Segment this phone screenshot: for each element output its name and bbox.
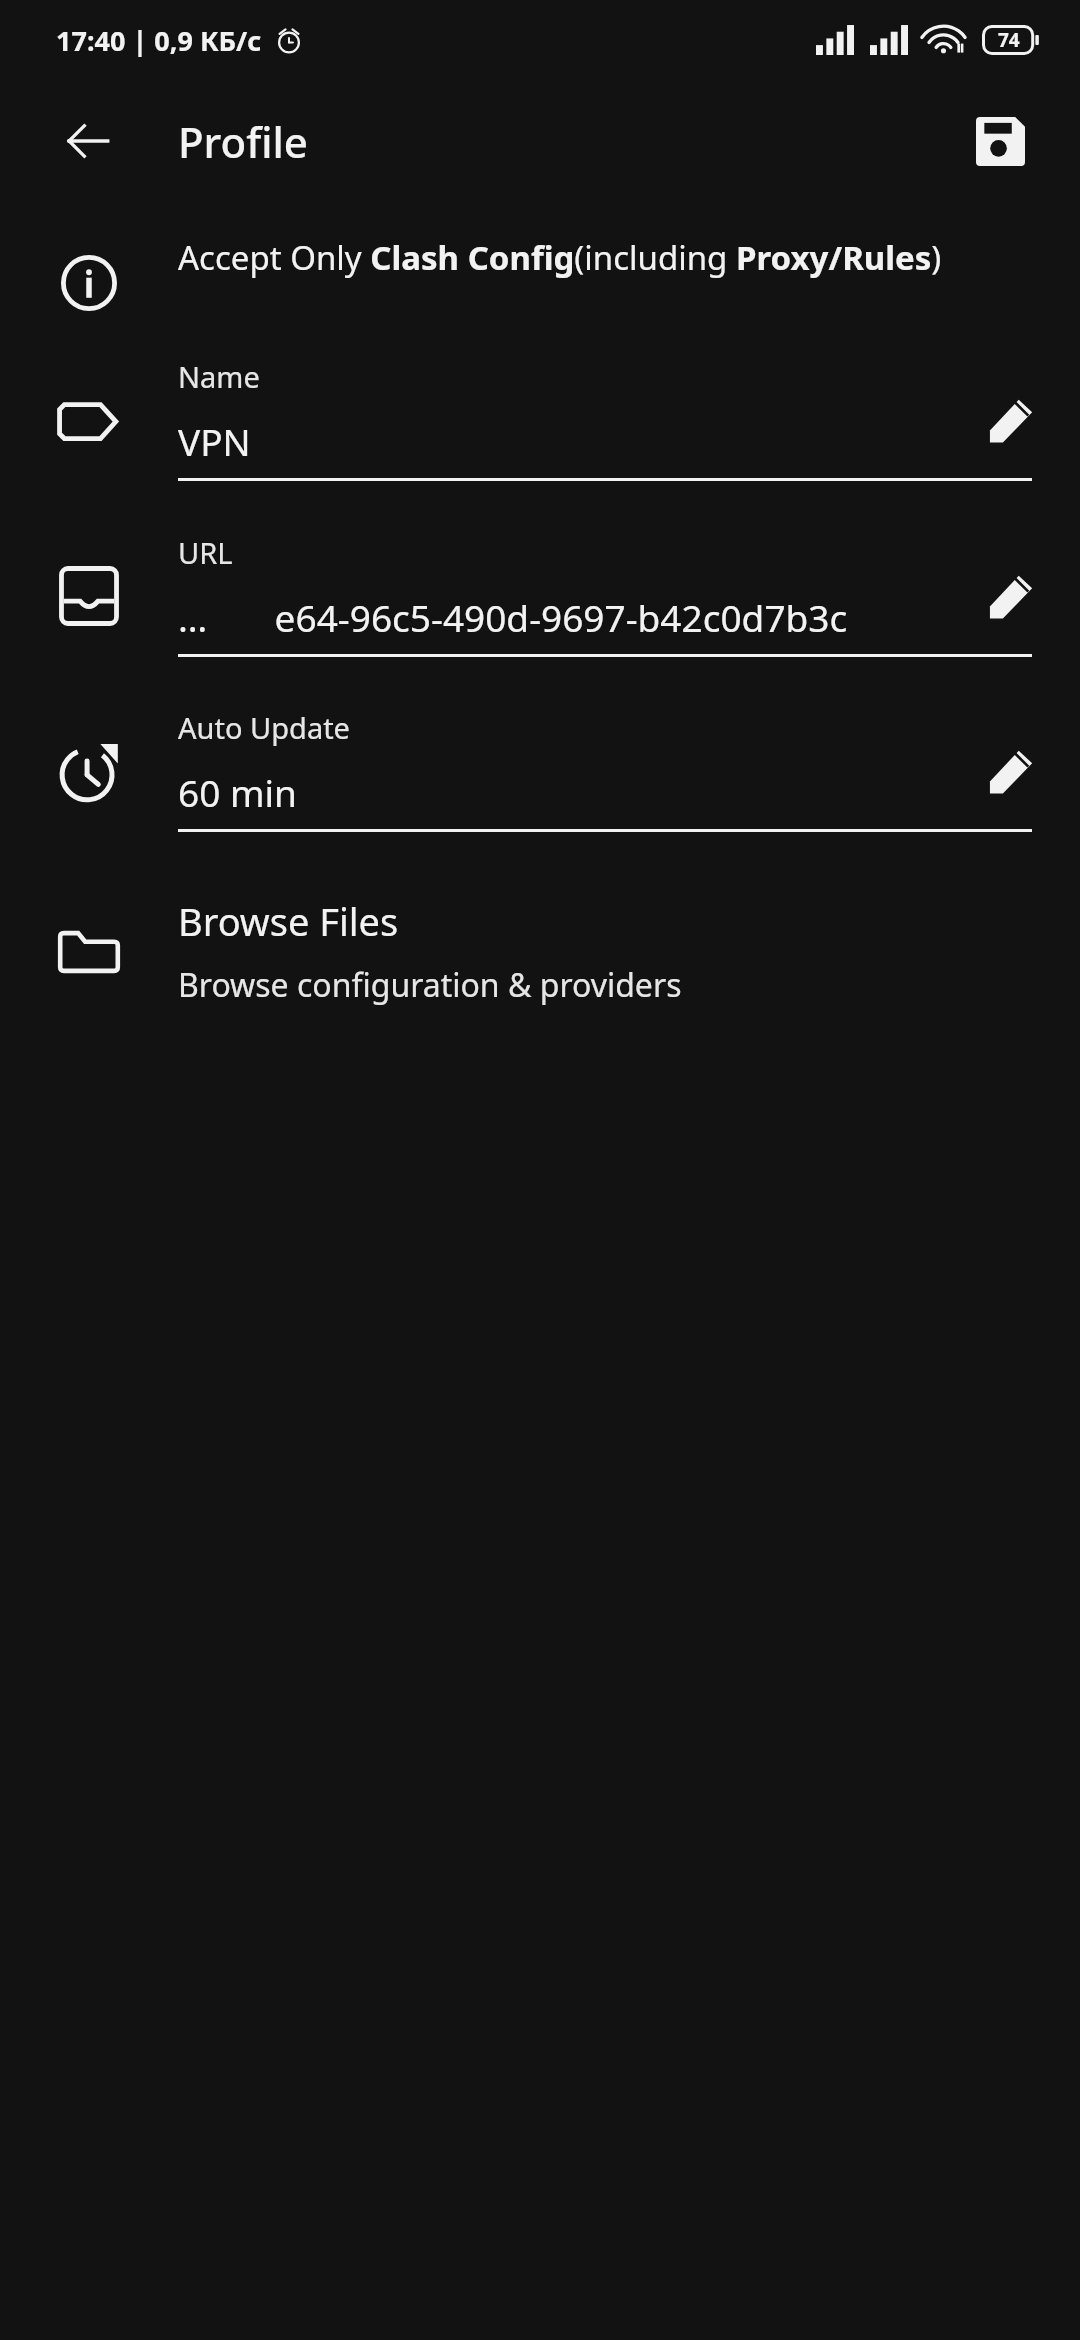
button[interactable]: Browse Files: [0, 876, 1080, 1026]
button[interactable]: Edit Auto Update: [974, 733, 1050, 809]
staticText: VPN: [178, 416, 990, 466]
staticText: Auto Update: [178, 708, 350, 747]
staticText: URL: [178, 533, 233, 572]
button[interactable]: Back: [52, 105, 124, 177]
staticText: Name: [178, 357, 260, 396]
staticText: 74: [998, 27, 1020, 53]
button[interactable]: Auto Update: [0, 698, 1080, 843]
button[interactable]: Save: [962, 103, 1038, 179]
button[interactable]: URL: [0, 523, 1080, 668]
button[interactable]: Edit URL: [974, 558, 1050, 634]
button[interactable]: Name: [0, 347, 1080, 492]
staticText: 17:40 | 0,9 КБ/с: [56, 22, 262, 59]
staticText: Browse Files: [178, 895, 399, 947]
staticText: Profile: [178, 113, 308, 170]
staticText: … e64-96c5-490d-9697-b42c0d7b3c: [178, 592, 990, 642]
staticText: 60 min: [178, 767, 990, 817]
button[interactable]: Accept Only Clash Config(including Proxy…: [0, 235, 1080, 315]
staticText: Browse configuration & providers: [178, 963, 682, 1007]
staticText: Accept Only Clash Config(including Proxy…: [178, 235, 942, 280]
button[interactable]: Edit Name: [974, 382, 1050, 458]
